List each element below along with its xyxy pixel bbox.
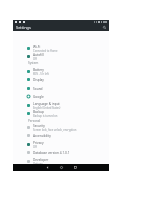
staticText: Autofill — [33, 53, 44, 57]
staticText: Off — [33, 57, 37, 61]
button[interactable]: Recents — [72, 164, 79, 171]
button[interactable]: Developer — [13, 157, 109, 166]
button[interactable]: Backup — [13, 109, 109, 118]
staticText: Settings — [16, 25, 31, 30]
button[interactable]: Sound — [13, 84, 109, 93]
staticText: Personal — [28, 119, 41, 123]
button[interactable]: Security — [13, 123, 109, 132]
staticText: Connected to Home — [33, 49, 58, 53]
staticText: Privacy — [33, 141, 44, 145]
staticText: Screen lock, face unlock, encryption — [33, 128, 77, 132]
button[interactable]: Battery — [13, 67, 109, 76]
staticText: 80% - 5 h left — [33, 72, 49, 76]
button[interactable]: Autofill — [13, 52, 109, 61]
staticText: Google — [33, 95, 44, 99]
staticText: Language & input — [33, 102, 60, 106]
staticText: Battery — [33, 68, 44, 72]
staticText: English (United States) — [33, 106, 61, 110]
button[interactable]: Database version 4.1.0.1 — [13, 148, 109, 157]
staticText: Accessibility — [33, 134, 51, 138]
staticText: System — [28, 61, 39, 65]
staticText: Backup is turned on — [33, 114, 58, 118]
staticText: Display — [33, 78, 44, 82]
button[interactable]: Display — [13, 75, 109, 84]
button[interactable]: Search — [102, 25, 106, 29]
button[interactable]: Home — [58, 164, 65, 171]
button[interactable]: Google — [13, 92, 109, 101]
staticText: Off — [33, 145, 37, 149]
staticText: Database version 4.1.0.1 — [33, 151, 70, 155]
button[interactable]: Privacy — [13, 140, 109, 149]
button[interactable]: Back — [44, 164, 51, 171]
staticText: Options — [33, 162, 43, 166]
button[interactable]: Accessibility — [13, 131, 109, 140]
staticText: Wi-Fi — [33, 45, 41, 49]
button[interactable]: Language & input — [13, 101, 109, 110]
staticText: Security — [33, 124, 45, 128]
staticText: Backup — [33, 110, 45, 114]
button[interactable]: Wi-Fi — [13, 44, 109, 53]
staticText: Developer — [33, 158, 49, 162]
staticText: Sound — [33, 87, 43, 91]
